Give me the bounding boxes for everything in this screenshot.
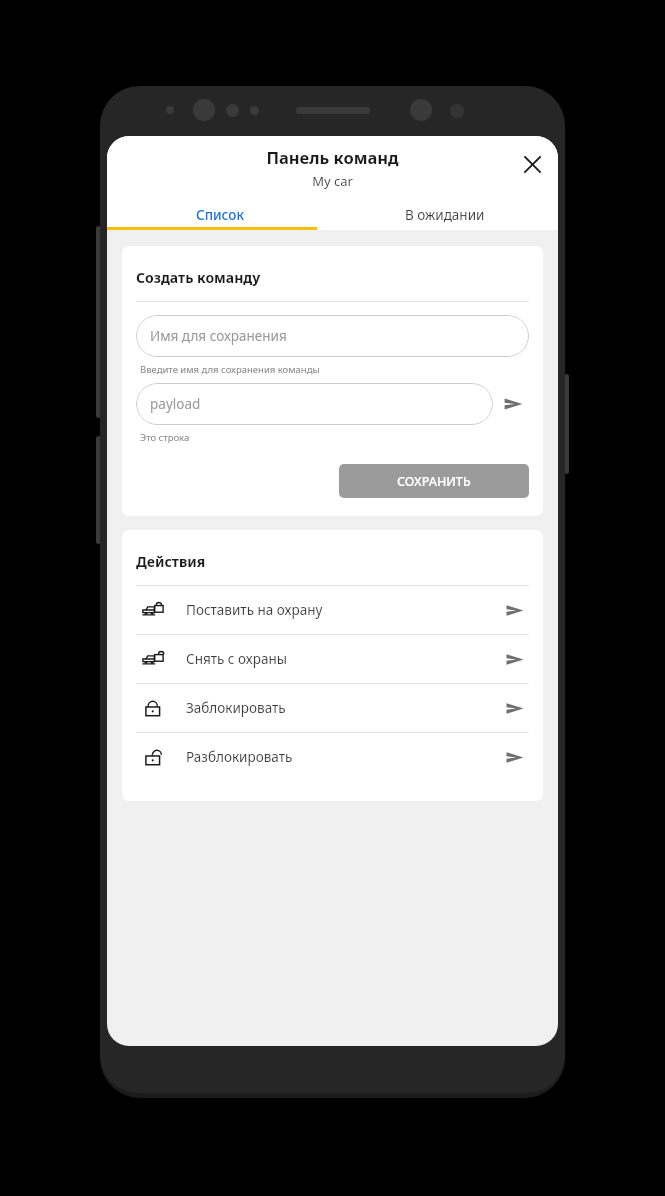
button[interactable]: Send Снять с охраны bbox=[495, 640, 533, 678]
button[interactable]: Снять с охраны bbox=[122, 635, 543, 683]
staticText: Список bbox=[196, 206, 244, 224]
staticText: СОХРАНИТЬ bbox=[397, 473, 471, 490]
button[interactable]: Заблокировать bbox=[122, 684, 543, 732]
button[interactable]: Send Поставить на охрану bbox=[495, 591, 533, 629]
staticText: Имя для сохранения bbox=[150, 327, 287, 345]
button[interactable]: Send Заблокировать bbox=[495, 689, 533, 727]
staticText: Поставить на охрану bbox=[186, 601, 323, 619]
button[interactable]: Список bbox=[107, 200, 332, 230]
staticText: Создать команду bbox=[136, 268, 261, 287]
staticText: Действия bbox=[136, 552, 206, 571]
button[interactable]: payload bbox=[136, 383, 493, 425]
staticText: My car bbox=[312, 172, 353, 190]
button[interactable]: Send Разблокировать bbox=[495, 738, 533, 776]
button[interactable]: В ожидании bbox=[332, 200, 558, 230]
staticText: payload bbox=[150, 395, 201, 413]
staticText: В ожидании bbox=[405, 206, 485, 224]
button[interactable]: Close bbox=[512, 144, 552, 184]
staticText: Разблокировать bbox=[186, 748, 293, 766]
staticText: Снять с охраны bbox=[186, 650, 287, 668]
staticText: Это строка bbox=[140, 431, 190, 444]
button[interactable]: Send payload bbox=[493, 384, 533, 424]
staticText: Заблокировать bbox=[186, 699, 286, 717]
button[interactable]: Имя для сохранения bbox=[136, 315, 529, 357]
button[interactable]: СОХРАНИТЬ bbox=[339, 464, 529, 498]
button[interactable]: Поставить на охрану bbox=[122, 586, 543, 634]
staticText: Панель команд bbox=[266, 146, 399, 168]
staticText: Введите имя для сохранения команды bbox=[140, 363, 320, 376]
button[interactable]: Разблокировать bbox=[122, 733, 543, 781]
